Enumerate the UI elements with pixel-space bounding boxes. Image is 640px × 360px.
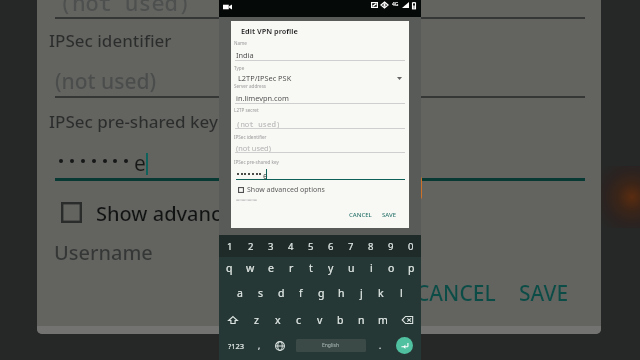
button[interactable]: r (281, 257, 301, 278)
staticText: IPSec pre-shared key (234, 159, 279, 165)
button[interactable]: 8 (361, 235, 381, 257)
staticText: (not used) (59, 0, 192, 17)
staticText: (not used) (236, 143, 271, 153)
button[interactable]: f (291, 280, 311, 306)
staticText: Type (234, 65, 245, 71)
staticText: h (338, 286, 345, 300)
staticText: 6 (328, 240, 334, 253)
staticText: 8 (368, 240, 374, 253)
staticText: s (258, 286, 264, 300)
button[interactable]: i (361, 257, 381, 278)
button[interactable]: a (229, 280, 250, 306)
button[interactable]: d (271, 280, 291, 306)
button[interactable]: z (246, 307, 267, 333)
button[interactable]: t (301, 257, 321, 278)
button[interactable]: CANCEL (349, 211, 372, 219)
button[interactable]: u (341, 257, 361, 278)
staticText: India (236, 50, 254, 60)
staticText: , (258, 340, 261, 351)
button[interactable]: Shift (219, 307, 246, 333)
staticText: a (237, 286, 243, 300)
button[interactable]: q (219, 257, 240, 278)
staticText: 3 (268, 240, 274, 253)
button[interactable]: 4 (281, 235, 301, 257)
staticText: (not used) (236, 119, 281, 129)
staticText: Show advanced options (96, 200, 323, 227)
button[interactable]: e (261, 257, 281, 278)
staticText: 2 (248, 240, 254, 253)
staticText: CANCEL (349, 211, 372, 219)
staticText: Name (234, 40, 247, 46)
staticText: c (296, 313, 302, 327)
button[interactable]: h (331, 280, 351, 306)
button[interactable]: b (330, 307, 351, 333)
button[interactable]: English (296, 339, 366, 352)
staticText: Show advanced options (247, 185, 325, 195)
staticText: f (299, 286, 303, 300)
staticText: Server address (234, 83, 267, 89)
staticText: r (289, 261, 294, 275)
button[interactable]: , (251, 333, 267, 358)
staticText: CANCEL (416, 279, 496, 308)
button[interactable]: SAVE (382, 211, 397, 219)
staticText: x (275, 313, 281, 327)
staticText: u (348, 261, 355, 275)
staticText: English (322, 342, 340, 349)
button[interactable]: p (401, 257, 421, 278)
button[interactable]: 1 (219, 235, 240, 257)
staticText: e (134, 149, 146, 178)
button[interactable]: ?123 (221, 333, 251, 358)
button[interactable]: 0 (401, 235, 421, 257)
button[interactable]: k (371, 280, 391, 306)
button[interactable]: x (267, 307, 288, 333)
button[interactable]: 7 (341, 235, 361, 257)
staticText: IPSec identifier (49, 29, 172, 52)
staticText: v (317, 313, 323, 327)
staticText: l (400, 286, 403, 300)
staticText: L2TP/IPSec PSK (238, 73, 292, 83)
button[interactable]: 5 (301, 235, 321, 257)
staticText: 7 (348, 240, 354, 253)
button[interactable]: Change language (269, 333, 291, 358)
staticText: t (309, 261, 313, 275)
staticText: Username (54, 239, 153, 266)
button[interactable]: g (311, 280, 331, 306)
button[interactable]: n (351, 307, 372, 333)
staticText: i (370, 261, 373, 275)
button[interactable]: 2 (240, 235, 261, 257)
staticText: k (378, 286, 384, 300)
button[interactable]: y (321, 257, 341, 278)
staticText: m (378, 313, 388, 327)
button[interactable]: Backspace (393, 307, 421, 333)
button[interactable]: . (371, 333, 389, 358)
button[interactable]: Enter (389, 333, 419, 358)
button[interactable]: 3 (261, 235, 281, 257)
button[interactable]: c (288, 307, 309, 333)
staticText: q (226, 261, 233, 275)
button[interactable]: Show advanced options (238, 185, 325, 195)
staticText: e (268, 261, 274, 275)
staticText: 4 (288, 240, 294, 253)
staticText: . (379, 340, 382, 351)
staticText: d (278, 286, 285, 300)
staticText: z (254, 313, 259, 327)
staticText: SAVE (519, 279, 569, 308)
button[interactable]: w (240, 257, 261, 278)
button[interactable]: v (309, 307, 330, 333)
button[interactable]: l (391, 280, 411, 306)
button[interactable]: j (351, 280, 371, 306)
button[interactable]: o (381, 257, 401, 278)
staticText: e (263, 170, 268, 181)
staticText: w (246, 261, 255, 275)
staticText: 4G (392, 1, 399, 8)
staticText: IPSec pre-shared key (49, 110, 218, 133)
staticText: o (388, 261, 395, 275)
staticText: L2TP secret (234, 107, 259, 113)
button[interactable]: 6 (321, 235, 341, 257)
staticText: 5 (308, 240, 314, 253)
staticText: g (318, 286, 325, 300)
button[interactable]: s (250, 280, 271, 306)
button[interactable]: 9 (381, 235, 401, 257)
staticText: j (360, 286, 363, 300)
button[interactable]: m (372, 307, 393, 333)
